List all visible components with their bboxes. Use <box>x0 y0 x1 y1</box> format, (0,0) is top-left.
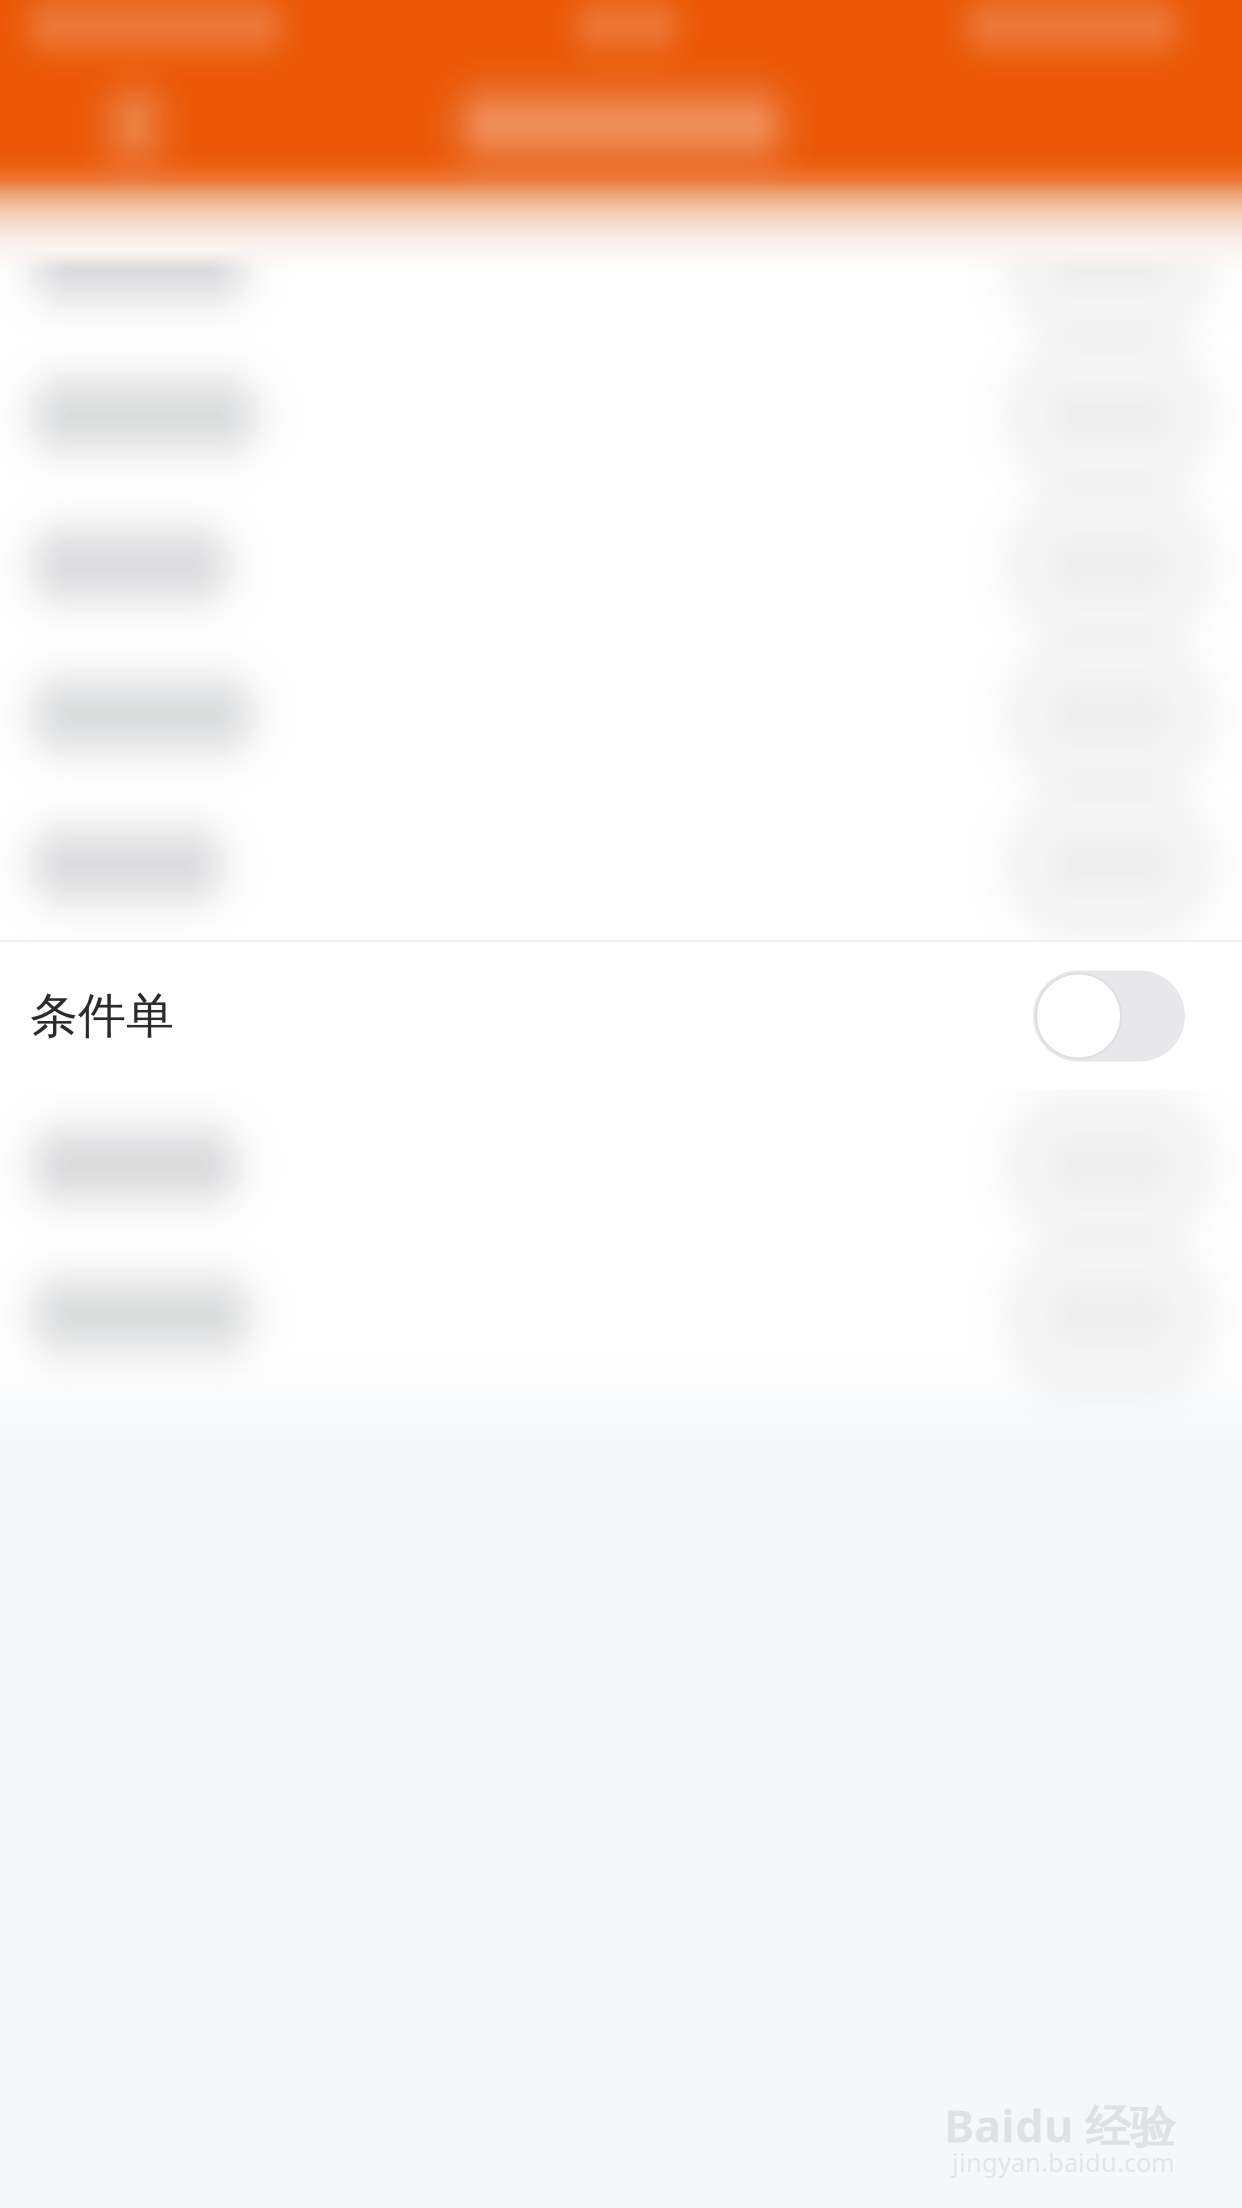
button[interactable] <box>0 0 1242 2208</box>
button[interactable] <box>0 0 1242 2208</box>
staticText: 条件单 <box>30 986 174 1045</box>
button[interactable] <box>0 0 1242 2208</box>
staticText: jingyan.baidu.com <box>952 2145 1175 2179</box>
button[interactable] <box>0 0 1242 2208</box>
staticText: Baidu 经验 <box>944 2095 1175 2155</box>
button[interactable] <box>0 0 1242 2208</box>
button[interactable]: 条件单 <box>0 940 1242 1090</box>
button[interactable] <box>0 0 1242 2208</box>
button[interactable] <box>0 0 1242 2208</box>
button[interactable]: Back <box>0 55 1242 195</box>
